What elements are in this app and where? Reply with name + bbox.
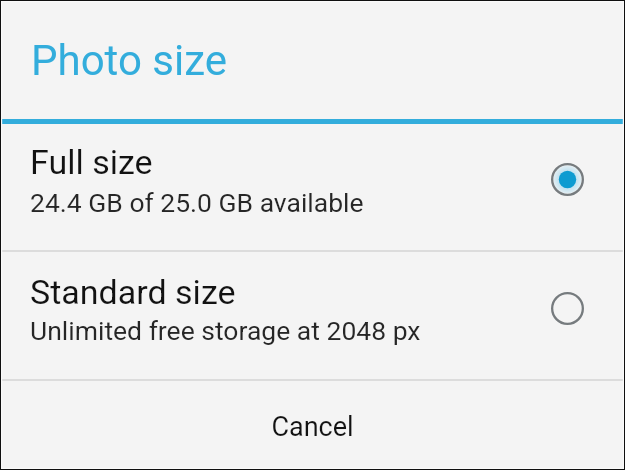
staticText: Cancel — [271, 411, 354, 443]
button[interactable]: Standard size, not selected — [551, 292, 584, 325]
staticText: Standard size — [30, 272, 236, 312]
staticText: Full size — [30, 142, 153, 182]
button[interactable]: Standard size — [1, 252, 624, 380]
staticText: Unlimited free storage at 2048 px — [30, 315, 421, 346]
button[interactable]: Full size — [1, 124, 624, 251]
button[interactable]: Full size, selected — [551, 163, 584, 196]
button[interactable]: Cancel — [1, 381, 624, 469]
staticText: Photo size — [31, 36, 227, 85]
staticText: 24.4 GB of 25.0 GB available — [30, 187, 364, 218]
